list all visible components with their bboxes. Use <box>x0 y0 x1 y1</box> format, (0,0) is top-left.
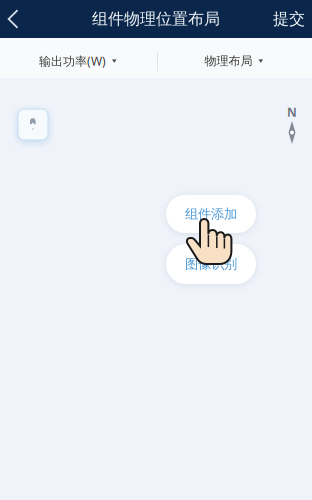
staticText: 图像识别 <box>185 256 237 272</box>
staticText: 组件添加 <box>185 206 237 222</box>
button[interactable]: 物理布局 <box>156 41 312 81</box>
staticText: 输出功率(W) <box>39 53 106 69</box>
staticText: 物理布局 <box>204 54 252 68</box>
button[interactable]: 图像识别 <box>166 244 256 284</box>
staticText: N <box>287 104 297 120</box>
staticText: 提交 <box>273 9 305 29</box>
button[interactable]: 输出功率(W) <box>0 41 156 81</box>
button[interactable]: Back <box>0 0 30 38</box>
staticText: 组件物理位置布局 <box>92 9 220 29</box>
button[interactable]: 组件添加 <box>166 195 256 233</box>
button[interactable]: 提交 <box>266 0 312 38</box>
